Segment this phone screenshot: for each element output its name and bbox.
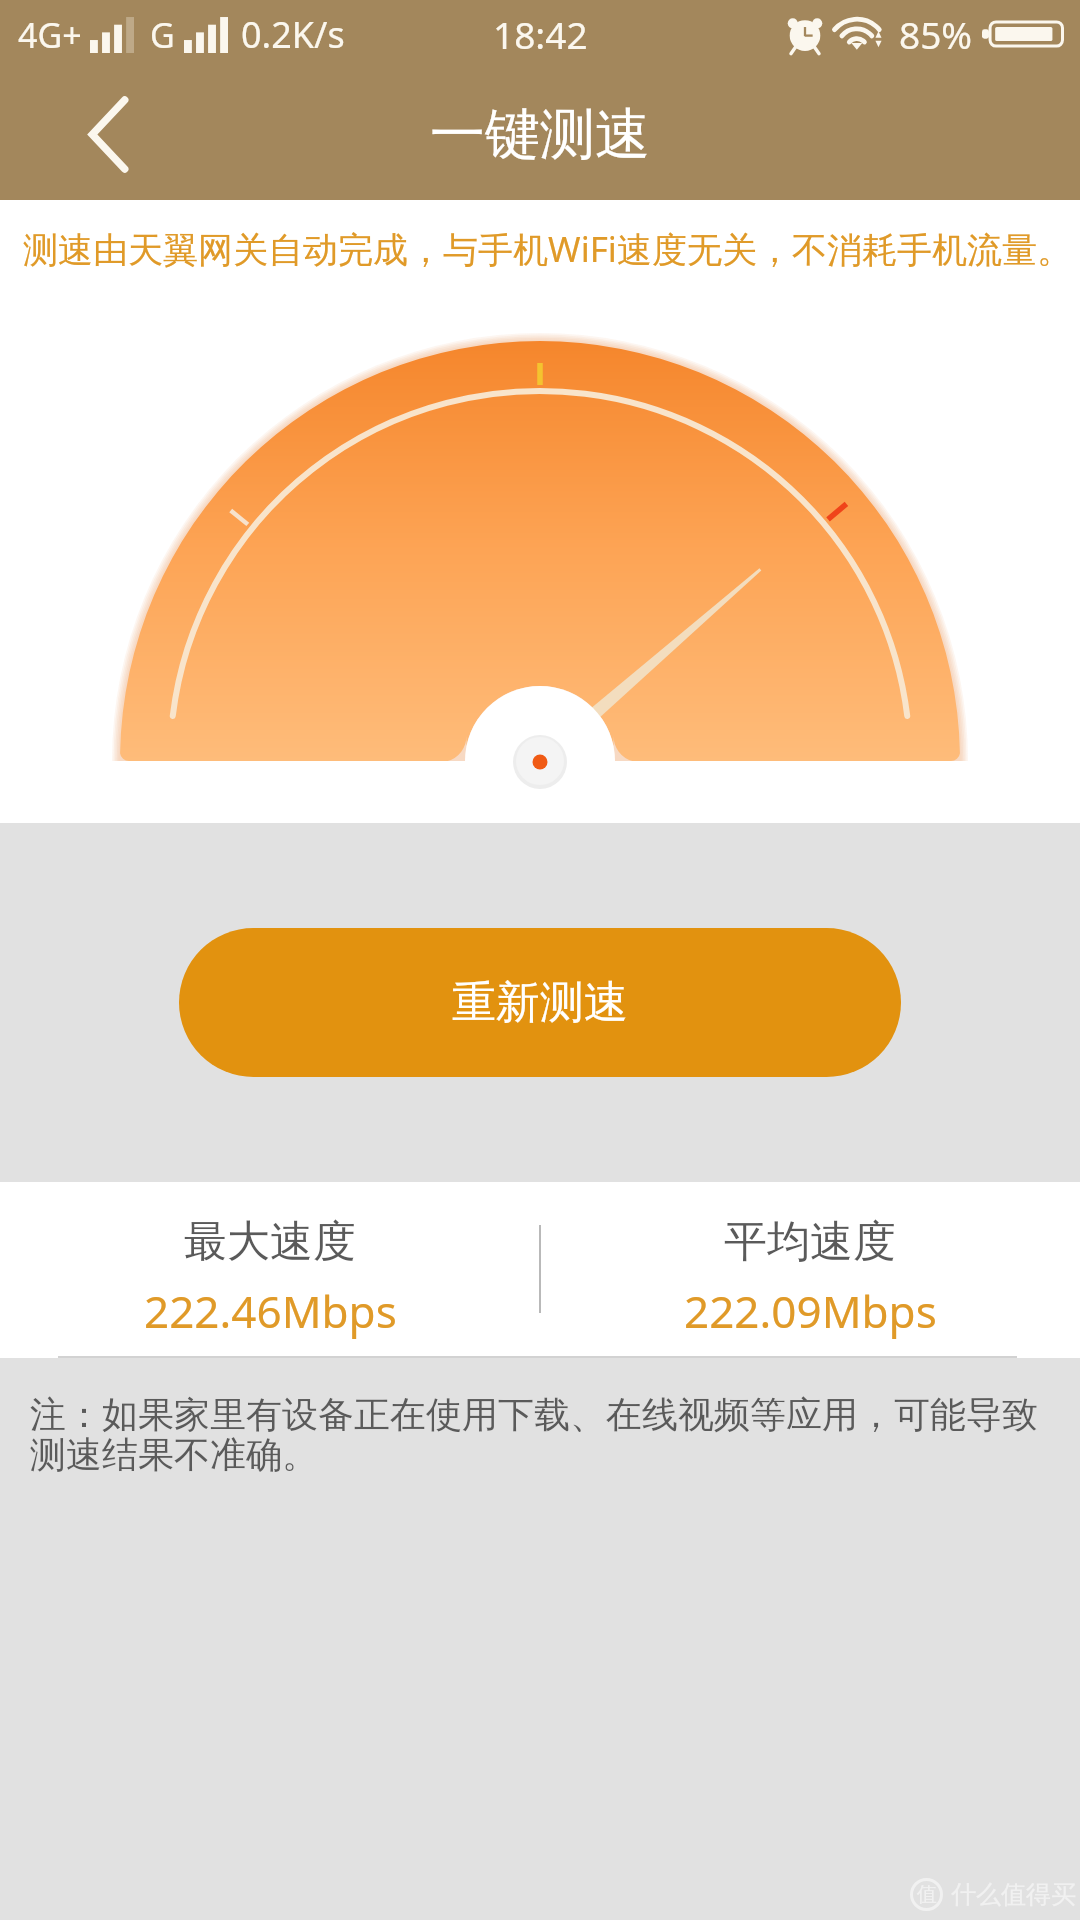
staticText: 值 [917,1882,937,1907]
staticText: 222.46Mbps [144,1281,397,1341]
staticText: 什么值得买 [951,1879,1076,1910]
staticText: 0.2K/s [241,10,345,59]
staticText: 最大速度 [184,1215,356,1269]
staticText: G [150,12,175,58]
staticText: 测速由天翼网关自动完成，与手机WiFi速度无关，不消耗手机流量。 [23,225,1072,273]
staticText: 注：如果家里有设备正在使用下载、在线视频等应用，可能导致测速结果不准确。 [30,1392,1040,1478]
staticText: 4G+ [18,12,82,58]
staticText: 85% [899,9,973,59]
staticText: 平均速度 [724,1215,896,1269]
staticText: 18:42 [493,9,588,59]
staticText: 一键测速 [430,100,650,169]
button[interactable]: Back [60,86,156,182]
staticText: 222.09Mbps [684,1281,937,1341]
staticText: 重新测速 [452,975,628,1030]
button[interactable]: 重新测速 [179,928,901,1077]
